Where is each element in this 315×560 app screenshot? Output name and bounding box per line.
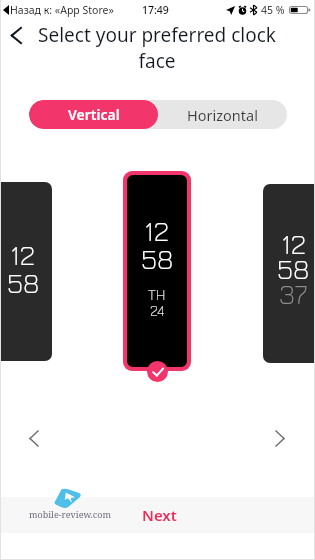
button[interactable]: Vertical: [29, 100, 158, 129]
staticText: 37: [279, 277, 308, 310]
staticText: Next: [142, 505, 177, 525]
staticText: TH: [148, 286, 166, 303]
button[interactable]: 12: [0, 182, 52, 361]
staticText: 12: [144, 214, 170, 247]
staticText: 58: [7, 266, 40, 299]
staticText: Vertical: [68, 105, 120, 124]
staticText: 45 %: [261, 3, 285, 17]
button[interactable]: Selected: [147, 361, 168, 382]
staticText: 17:49: [142, 3, 169, 17]
button[interactable]: 12: [127, 175, 187, 367]
button[interactable]: Next: [142, 505, 177, 525]
staticText: Select your preferred clock face: [33, 22, 281, 73]
staticText: 12: [10, 238, 36, 271]
staticText: Horizontal: [187, 105, 258, 125]
staticText: 24: [150, 302, 165, 319]
staticText: 12: [281, 227, 307, 260]
button[interactable]: 12: [263, 184, 315, 363]
staticText: Назад к: «App Store»: [10, 3, 114, 17]
staticText: 58: [141, 242, 174, 275]
staticText: mobile-review.com: [29, 508, 111, 520]
button[interactable]: Back: [2, 22, 30, 48]
staticText: 58: [277, 252, 310, 285]
button[interactable]: Horizontal: [158, 100, 287, 129]
button[interactable]: Previous: [22, 426, 46, 450]
button[interactable]: Next clock face: [268, 426, 292, 450]
